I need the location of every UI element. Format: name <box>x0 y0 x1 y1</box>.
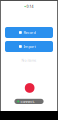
staticText: Import <box>23 44 35 49</box>
staticText: No items <box>21 58 36 63</box>
button[interactable]: Import <box>5 41 53 52</box>
button[interactable]: Mic connected <box>14 99 44 104</box>
staticText: Record <box>23 30 35 35</box>
staticText: 0:14 <box>27 4 34 9</box>
button[interactable]: Record <box>5 27 53 38</box>
staticText: Mic connected <box>20 93 34 109</box>
button[interactable]: Record <box>25 83 34 93</box>
